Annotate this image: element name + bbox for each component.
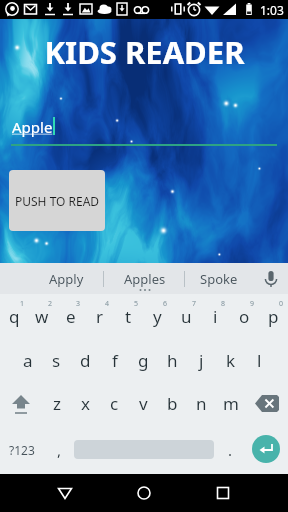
button[interactable]: k bbox=[216, 339, 245, 382]
button[interactable]: d bbox=[71, 339, 100, 382]
button[interactable]: r bbox=[85, 294, 114, 339]
button[interactable]: u bbox=[172, 294, 201, 339]
staticText: s bbox=[52, 349, 61, 372]
staticText: , bbox=[57, 440, 62, 460]
button[interactable]: Back bbox=[45, 474, 85, 512]
staticText: 5 bbox=[134, 299, 139, 309]
staticText: KIDS READER bbox=[44, 31, 245, 73]
staticText: . bbox=[228, 440, 233, 460]
staticText: b bbox=[167, 392, 178, 415]
button[interactable]: f bbox=[100, 339, 129, 382]
staticText: n bbox=[196, 392, 207, 415]
staticText: q bbox=[9, 305, 20, 328]
button[interactable]: . bbox=[215, 425, 245, 474]
staticText: w bbox=[35, 305, 49, 328]
staticText: t bbox=[125, 305, 132, 328]
staticText: r bbox=[96, 305, 104, 328]
button[interactable]: v bbox=[129, 382, 158, 425]
button[interactable]: g bbox=[129, 339, 158, 382]
button[interactable]: m bbox=[216, 382, 245, 425]
button[interactable]: s bbox=[42, 339, 71, 382]
staticText: g bbox=[138, 349, 149, 372]
button[interactable]: Home bbox=[124, 474, 164, 512]
button[interactable]: Enter bbox=[252, 435, 280, 463]
staticText: PUSH TO READ bbox=[15, 193, 100, 209]
staticText: 7 bbox=[192, 299, 197, 309]
button[interactable]: i bbox=[201, 294, 230, 339]
button[interactable]: b bbox=[158, 382, 187, 425]
staticText: Apples bbox=[124, 270, 166, 288]
staticText: 1 bbox=[20, 299, 25, 309]
staticText: 8 bbox=[221, 299, 226, 309]
staticText: y bbox=[153, 305, 162, 328]
staticText: i bbox=[213, 305, 218, 328]
button[interactable]: l bbox=[245, 339, 274, 382]
staticText: o bbox=[239, 305, 250, 328]
staticText: ?123 bbox=[9, 442, 35, 458]
button[interactable]: e bbox=[56, 294, 85, 339]
button[interactable]: PUSH TO READ bbox=[9, 170, 105, 231]
staticText: a bbox=[23, 349, 33, 372]
staticText: z bbox=[53, 392, 61, 415]
staticText: 6 bbox=[163, 299, 168, 309]
button[interactable]: Backspace bbox=[245, 382, 288, 425]
button[interactable]: Apply bbox=[29, 263, 104, 294]
staticText: 2 bbox=[48, 299, 53, 309]
staticText: 0 bbox=[279, 299, 284, 309]
staticText: p bbox=[268, 305, 279, 328]
button[interactable]: q bbox=[0, 294, 28, 339]
staticText: f bbox=[112, 349, 118, 372]
button[interactable]: w bbox=[28, 294, 56, 339]
staticText: k bbox=[226, 349, 236, 372]
button[interactable]: Apples bbox=[104, 263, 185, 294]
button[interactable]: o bbox=[230, 294, 259, 339]
staticText: j bbox=[199, 349, 204, 372]
staticText: 9 bbox=[250, 299, 255, 309]
staticText: 3 bbox=[76, 299, 81, 309]
staticText: l bbox=[257, 349, 262, 372]
button[interactable]: x bbox=[71, 382, 100, 425]
staticText: x bbox=[81, 392, 90, 415]
staticText: v bbox=[139, 392, 148, 415]
button[interactable]: t bbox=[114, 294, 143, 339]
staticText: Apply bbox=[49, 270, 84, 288]
button[interactable]: y bbox=[143, 294, 172, 339]
staticText: m bbox=[223, 392, 239, 415]
staticText: e bbox=[66, 305, 76, 328]
button[interactable]: Voice input bbox=[253, 263, 288, 294]
button[interactable]: h bbox=[158, 339, 187, 382]
staticText: h bbox=[167, 349, 178, 372]
button[interactable]: n bbox=[187, 382, 216, 425]
staticText: 1:03 bbox=[260, 2, 284, 18]
staticText: u bbox=[181, 305, 192, 328]
staticText: Spoke bbox=[200, 270, 238, 288]
button[interactable]: , bbox=[44, 425, 74, 474]
staticText: d bbox=[80, 349, 91, 372]
button[interactable]: Recent apps bbox=[203, 474, 243, 512]
button[interactable]: Spoke bbox=[185, 263, 253, 294]
staticText: Apple bbox=[12, 117, 53, 137]
button[interactable]: j bbox=[187, 339, 216, 382]
button[interactable]: Shift bbox=[0, 382, 42, 425]
button[interactable]: z bbox=[42, 382, 71, 425]
staticText: c bbox=[110, 392, 119, 415]
button[interactable]: c bbox=[100, 382, 129, 425]
button[interactable]: ?123 bbox=[0, 425, 44, 474]
button[interactable]: a bbox=[13, 339, 42, 382]
staticText: 4 bbox=[105, 299, 110, 309]
button[interactable]: p bbox=[259, 294, 288, 339]
